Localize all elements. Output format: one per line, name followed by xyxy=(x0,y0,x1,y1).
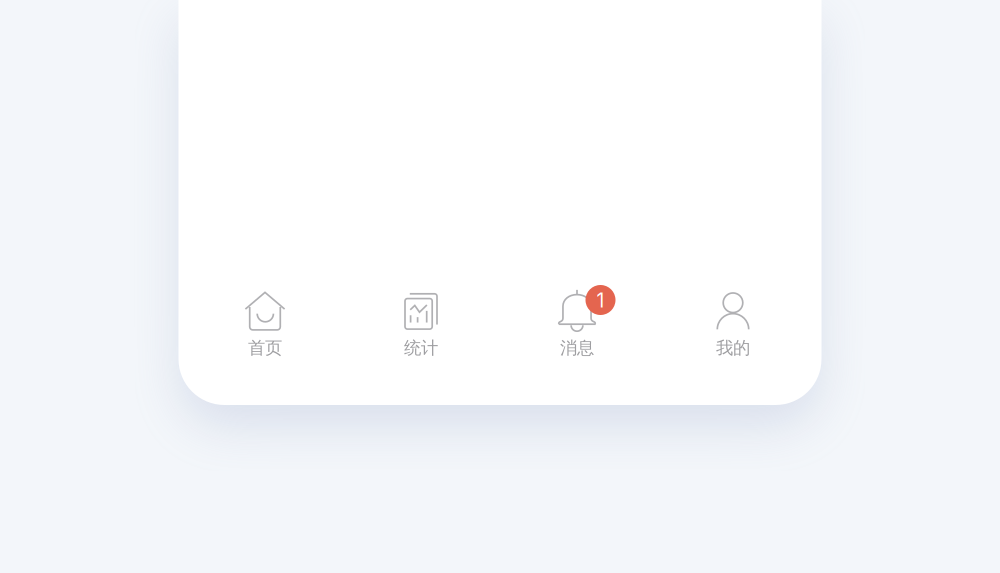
staticText: 消息 xyxy=(560,337,594,359)
staticText: 1 xyxy=(596,289,604,312)
button[interactable]: 统计 xyxy=(343,285,499,405)
button[interactable]: 我的 xyxy=(655,285,811,405)
button[interactable]: 1 xyxy=(499,285,655,405)
staticText: 首页 xyxy=(248,337,282,359)
staticText: 统计 xyxy=(404,337,438,359)
button[interactable]: 首页 xyxy=(187,285,343,405)
staticText: 我的 xyxy=(716,337,750,359)
